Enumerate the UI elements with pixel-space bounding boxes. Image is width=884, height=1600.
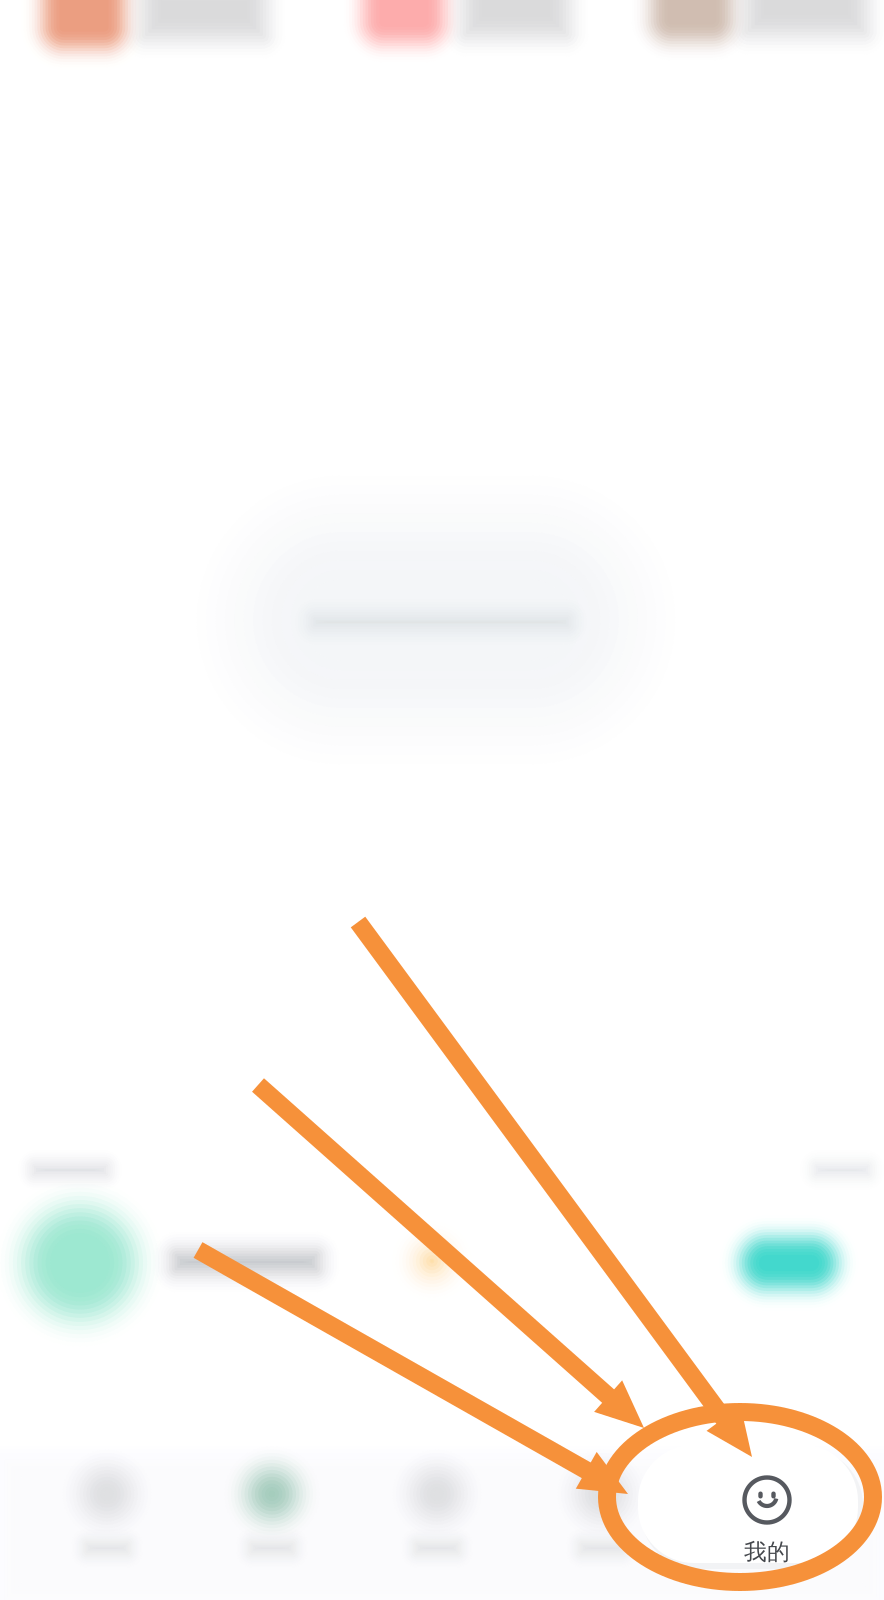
button[interactable]: Tab <box>0 0 884 1600</box>
button[interactable]: Shortcut <box>0 0 884 1600</box>
button[interactable]: Tab <box>0 0 884 1600</box>
button[interactable]: Tab <box>0 0 884 1600</box>
button[interactable]: Shortcut <box>0 0 884 1600</box>
button[interactable]: 我的 <box>0 0 884 1600</box>
staticText: 我的 <box>744 1538 790 1566</box>
button[interactable]: Shortcut <box>0 0 884 1600</box>
button[interactable]: Open <box>0 0 884 1600</box>
button[interactable]: Tab <box>0 0 884 1600</box>
